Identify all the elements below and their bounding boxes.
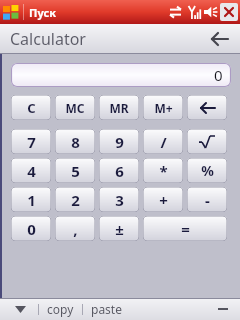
staticText: % xyxy=(201,161,214,180)
button[interactable]: 8 xyxy=(55,129,95,154)
button[interactable]: * xyxy=(143,158,183,183)
button[interactable]: Volume xyxy=(202,4,220,20)
button[interactable]: , xyxy=(55,216,95,241)
button[interactable]: 5 xyxy=(55,158,95,183)
button[interactable]: 0 xyxy=(11,63,231,87)
button[interactable]: Пуск xyxy=(29,5,56,20)
staticText: * xyxy=(159,161,168,181)
button[interactable]: copy xyxy=(47,301,74,317)
staticText: Calculator xyxy=(10,28,86,50)
button[interactable]: / xyxy=(143,129,183,154)
button[interactable]: Square root xyxy=(187,129,227,154)
button[interactable]: MC xyxy=(55,95,95,120)
button[interactable]: 7 xyxy=(11,129,51,154)
staticText: 1 xyxy=(27,190,36,210)
button[interactable]: Menu xyxy=(10,300,30,318)
button[interactable]: Backspace xyxy=(187,95,227,120)
button[interactable]: + xyxy=(143,187,183,212)
button[interactable]: Back xyxy=(208,28,230,50)
button[interactable]: 4 xyxy=(11,158,51,183)
staticText: ± xyxy=(115,219,124,239)
button[interactable]: ± xyxy=(99,216,139,241)
staticText: 7 xyxy=(27,132,36,152)
button[interactable]: 1 xyxy=(11,187,51,212)
staticText: , xyxy=(73,219,78,239)
button[interactable]: Minimize xyxy=(214,300,232,318)
button[interactable]: paste xyxy=(91,301,122,317)
button[interactable]: = xyxy=(143,216,227,241)
staticText: 2 xyxy=(71,190,80,210)
staticText: 3 xyxy=(115,190,124,210)
staticText: - xyxy=(205,190,210,210)
button[interactable]: - xyxy=(187,187,227,212)
button[interactable]: 3 xyxy=(99,187,139,212)
staticText: MC xyxy=(65,100,85,116)
staticText: + xyxy=(159,190,168,210)
button[interactable]: Close xyxy=(220,3,238,21)
staticText: 8 xyxy=(71,132,80,152)
staticText: 9 xyxy=(115,132,124,152)
staticText: 5 xyxy=(71,161,80,181)
button[interactable]: 6 xyxy=(99,158,139,183)
staticText: MR xyxy=(109,100,129,116)
staticText: = xyxy=(181,219,190,239)
staticText: Пуск xyxy=(29,5,56,20)
staticText: copy xyxy=(47,301,74,317)
staticText: / xyxy=(160,132,167,152)
button[interactable]: 0 xyxy=(11,216,51,241)
staticText: 4 xyxy=(27,161,36,181)
staticText: paste xyxy=(91,301,122,317)
staticText: 0 xyxy=(27,219,36,239)
staticText: 6 xyxy=(115,161,124,181)
button[interactable]: % xyxy=(187,158,227,183)
button[interactable]: 2 xyxy=(55,187,95,212)
button[interactable]: M+ xyxy=(143,95,183,120)
button[interactable]: Signal xyxy=(184,4,202,20)
staticText: M+ xyxy=(154,100,173,116)
button[interactable]: MR xyxy=(99,95,139,120)
staticText: C xyxy=(27,99,36,117)
button[interactable]: C xyxy=(11,95,51,120)
staticText: 0 xyxy=(214,65,223,85)
button[interactable]: Connectivity xyxy=(166,4,184,20)
button[interactable]: 9 xyxy=(99,129,139,154)
